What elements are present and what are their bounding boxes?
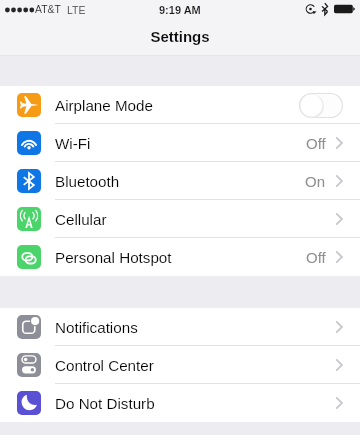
- staticText: Wi-Fi: [55, 135, 91, 152]
- staticText: Settings: [150, 28, 210, 45]
- staticText: Bluetooth: [55, 173, 120, 190]
- staticText: Cellular: [55, 211, 107, 228]
- button[interactable]: Cellular: [0, 200, 360, 238]
- staticText: 9:19 AM: [159, 4, 201, 16]
- other: Status icons: [300, 0, 360, 21]
- staticText: Notifications: [55, 319, 138, 336]
- button[interactable]: Wi-Fi: [0, 124, 360, 162]
- staticText: Personal Hotspot: [55, 249, 172, 266]
- staticText: Off: [306, 135, 326, 152]
- button[interactable]: Airplane Mode toggle: [299, 93, 343, 118]
- staticText: On: [305, 173, 326, 190]
- button[interactable]: Notifications: [0, 308, 360, 346]
- button[interactable]: Do Not Disturb: [0, 384, 360, 422]
- staticText: Off: [306, 249, 326, 266]
- staticText: Airplane Mode: [55, 97, 153, 114]
- button[interactable]: Bluetooth: [0, 162, 360, 200]
- staticText: Control Center: [55, 357, 154, 374]
- staticText: LTE: [67, 4, 86, 16]
- button[interactable]: Airplane Mode: [0, 86, 360, 124]
- button[interactable]: Control Center: [0, 346, 360, 384]
- staticText: Do Not Disturb: [55, 395, 155, 412]
- button[interactable]: Personal Hotspot: [0, 238, 360, 276]
- staticText: AT&T: [35, 4, 61, 16]
